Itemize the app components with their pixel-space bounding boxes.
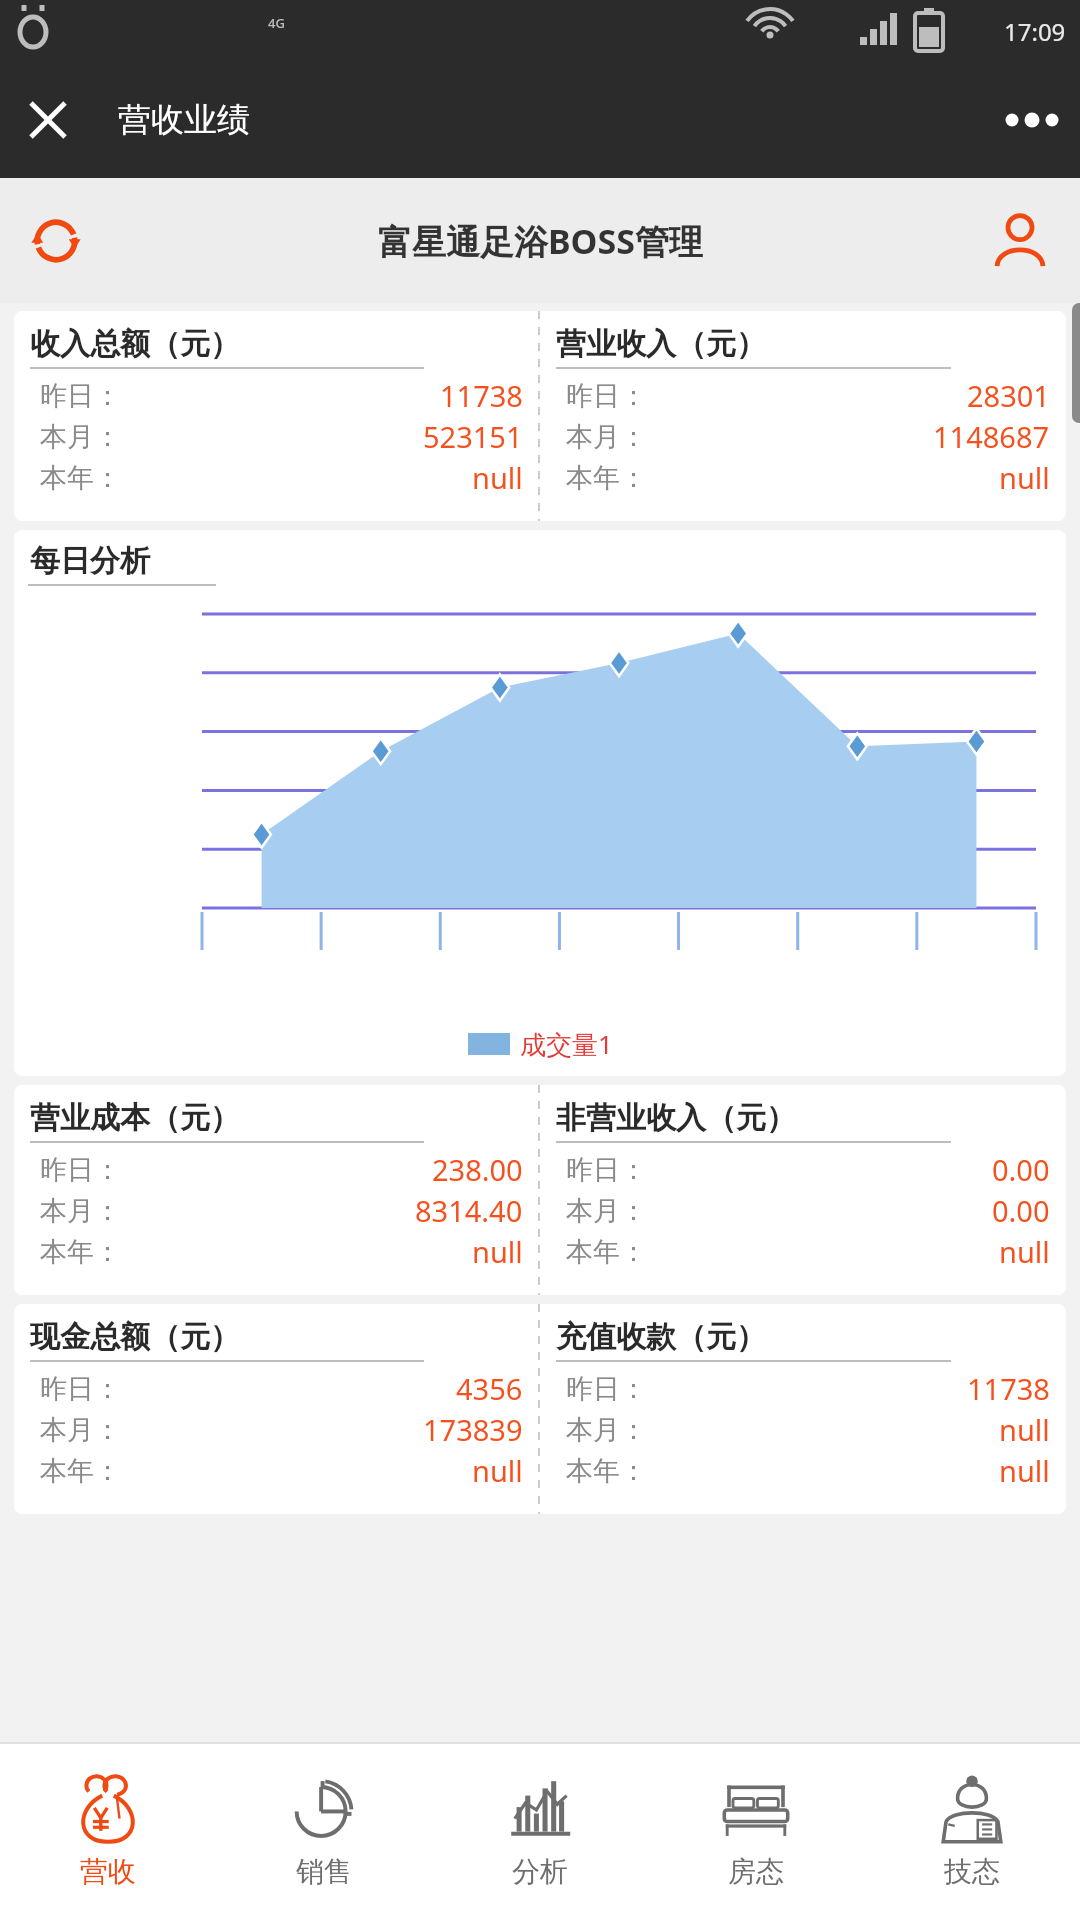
staticText: 本年： (40, 1454, 121, 1488)
staticText: 本月： (40, 1413, 121, 1447)
button[interactable]: More options (1002, 90, 1062, 150)
staticText: 4G (268, 14, 285, 32)
staticText: 营收业绩 (118, 99, 250, 141)
button[interactable]: 每日分析 (14, 530, 1066, 1076)
staticText: 非营业收入（元） (556, 1099, 796, 1137)
staticText: 本年： (40, 461, 121, 495)
staticText: 0.00 (992, 1191, 1050, 1230)
staticText: 11738 (440, 376, 523, 415)
staticText: 8314.40 (415, 1191, 523, 1230)
staticText: 本月： (566, 1413, 647, 1447)
staticText: 4356 (456, 1369, 523, 1408)
button[interactable]: 营业成本（元） (14, 1085, 1066, 1295)
staticText: 技态 (944, 1854, 1000, 1889)
staticText: 昨日： (40, 379, 121, 413)
staticText: 28301 (967, 376, 1050, 415)
staticText: null (999, 1451, 1050, 1490)
staticText: 本月： (40, 1194, 121, 1228)
staticText: 本年： (566, 461, 647, 495)
staticText: 238.00 (432, 1150, 523, 1189)
staticText: null (472, 1232, 523, 1271)
staticText: 充值收款（元） (556, 1318, 766, 1356)
staticText: 1148687 (933, 417, 1050, 456)
button[interactable]: Refresh (14, 199, 98, 283)
button[interactable]: 销售 (216, 1742, 432, 1920)
staticText: 成交量1 (520, 1026, 613, 1062)
staticText: 本月： (40, 420, 121, 454)
staticText: 营业收入（元） (556, 325, 766, 363)
staticText: null (999, 1410, 1050, 1449)
staticText: 营收 (80, 1854, 136, 1889)
staticText: 昨日： (40, 1372, 121, 1406)
staticText: 分析 (512, 1854, 568, 1889)
staticText: 昨日： (566, 1153, 647, 1187)
staticText: 本年： (40, 1235, 121, 1269)
staticText: null (999, 1232, 1050, 1271)
staticText: 营业成本（元） (30, 1099, 240, 1137)
staticText: 0.00 (992, 1150, 1050, 1189)
button[interactable]: Close (20, 92, 76, 148)
staticText: 昨日： (566, 1372, 647, 1406)
staticText: 17:09 (1004, 15, 1066, 48)
staticText: 昨日： (566, 379, 647, 413)
staticText: 销售 (296, 1854, 352, 1889)
staticText: 本年： (566, 1454, 647, 1488)
staticText: 现金总额（元） (30, 1318, 240, 1356)
staticText: null (472, 1451, 523, 1490)
button[interactable]: 分析 (432, 1742, 648, 1920)
staticText: 本年： (566, 1235, 647, 1269)
staticText: 11738 (967, 1369, 1050, 1408)
staticText: 昨日： (40, 1153, 121, 1187)
button[interactable]: 营收 (0, 1742, 216, 1920)
staticText: 富星通足浴BOSS管理 (378, 218, 703, 264)
staticText: null (472, 458, 523, 497)
staticText: 523151 (423, 417, 523, 456)
button[interactable]: Profile (978, 199, 1062, 283)
staticText: 本月： (566, 1194, 647, 1228)
button[interactable]: 技态 (864, 1742, 1080, 1920)
staticText: null (999, 458, 1050, 497)
staticText: 本月： (566, 420, 647, 454)
staticText: 收入总额（元） (30, 325, 240, 363)
button[interactable]: 房态 (648, 1742, 864, 1920)
button[interactable]: 收入总额（元） (14, 311, 1066, 521)
button[interactable]: 现金总额（元） (14, 1304, 1066, 1514)
staticText: 每日分析 (30, 542, 150, 580)
staticText: 房态 (728, 1854, 784, 1889)
staticText: 173839 (423, 1410, 523, 1449)
